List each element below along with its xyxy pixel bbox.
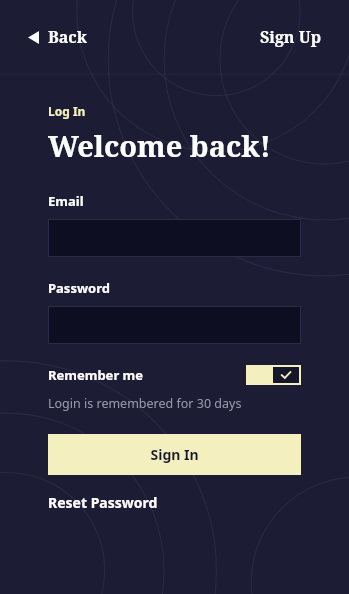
staticText: Sign In [150,445,199,464]
staticText: Sign Up [260,26,321,48]
staticText: Log In [48,103,86,119]
staticText: Remember me [48,366,144,384]
button[interactable]: Sign Up [254,20,327,54]
button[interactable]: Remember me toggle, on [246,365,301,385]
staticText: Password [48,279,110,297]
button[interactable] [48,306,301,344]
staticText: Back [48,26,87,48]
button[interactable]: Reset Password [48,493,158,512]
button[interactable]: Sign In [48,434,301,475]
staticText: Welcome back! [48,126,271,165]
staticText: Login is remembered for 30 days [48,395,242,412]
button[interactable] [48,219,301,257]
staticText: Email [48,192,84,210]
button[interactable]: Back [22,20,93,54]
staticText: Reset Password [48,493,158,512]
